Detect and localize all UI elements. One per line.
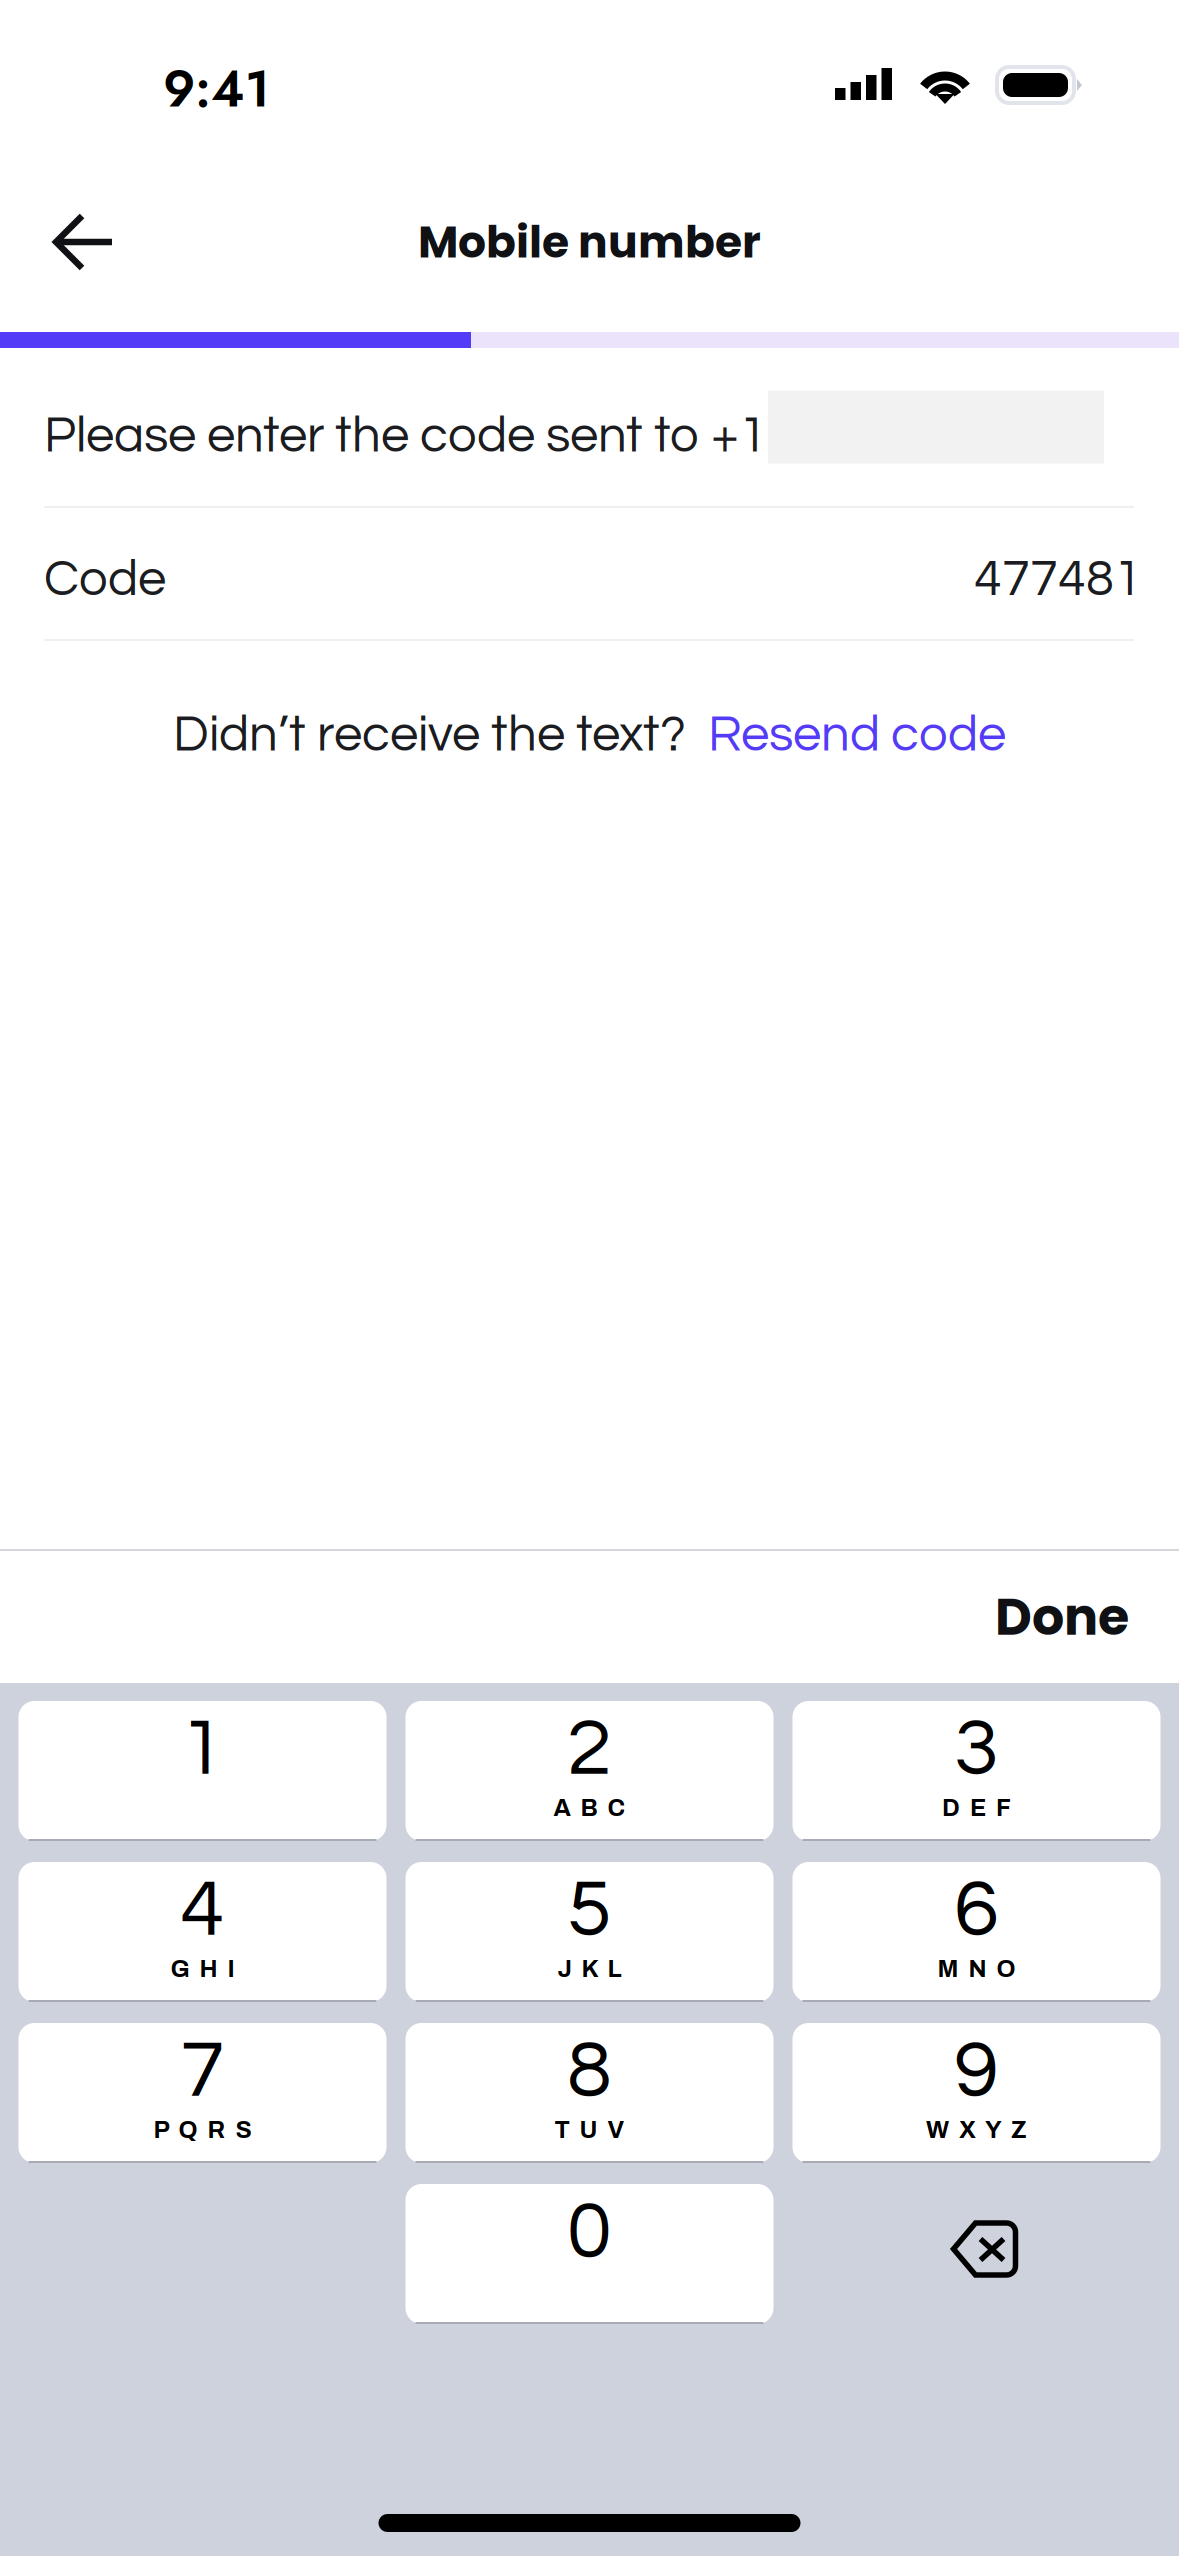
- staticText: W X Y Z: [926, 2117, 1027, 2143]
- staticText: 477481: [974, 553, 1142, 606]
- staticText: Resend code: [708, 709, 1006, 761]
- staticText: Please enter the code sent to +1: [44, 410, 767, 462]
- staticText: D E F: [942, 1795, 1011, 1821]
- staticText: M N O: [937, 1956, 1015, 1982]
- staticText: 8: [567, 2029, 612, 2113]
- button[interactable]: 8: [405, 2023, 773, 2163]
- button[interactable]: 7: [18, 2023, 386, 2163]
- staticText: 3: [954, 1707, 999, 1791]
- button[interactable]: Back: [0, 180, 160, 300]
- staticText: Done: [995, 1581, 1129, 1652]
- button[interactable]: 1: [18, 1701, 386, 1841]
- staticText: J K L: [557, 1956, 621, 1982]
- staticText: G H I: [170, 1956, 234, 1982]
- staticText: 0: [567, 2190, 612, 2274]
- staticText: 9: [954, 2029, 999, 2113]
- button[interactable]: 4: [18, 1862, 386, 2002]
- staticText: 5: [567, 1868, 612, 1952]
- staticText: P Q R S: [153, 2117, 251, 2143]
- staticText: Mobile number: [418, 211, 761, 273]
- staticText: 9:41: [163, 52, 270, 126]
- button[interactable]: 3: [792, 1701, 1160, 1841]
- button[interactable]: 6: [792, 1862, 1160, 2002]
- button[interactable]: 2: [405, 1701, 773, 1841]
- staticText: 7: [180, 2029, 225, 2113]
- staticText: 1: [180, 1707, 225, 1791]
- staticText: A B C: [553, 1795, 625, 1821]
- staticText: T U V: [554, 2117, 624, 2143]
- staticText: 2: [567, 1707, 612, 1791]
- button[interactable]: Delete: [792, 2184, 1160, 2324]
- button[interactable]: Done: [995, 1551, 1179, 1683]
- staticText: Code: [44, 553, 166, 606]
- button[interactable]: 0: [405, 2184, 773, 2324]
- button[interactable]: 5: [405, 1862, 773, 2002]
- staticText: Didn’t receive the text?: [173, 709, 686, 761]
- button[interactable]: Resend code: [708, 709, 1006, 761]
- staticText: 4: [180, 1868, 225, 1952]
- staticText: 6: [954, 1868, 999, 1952]
- button[interactable]: 9: [792, 2023, 1160, 2163]
